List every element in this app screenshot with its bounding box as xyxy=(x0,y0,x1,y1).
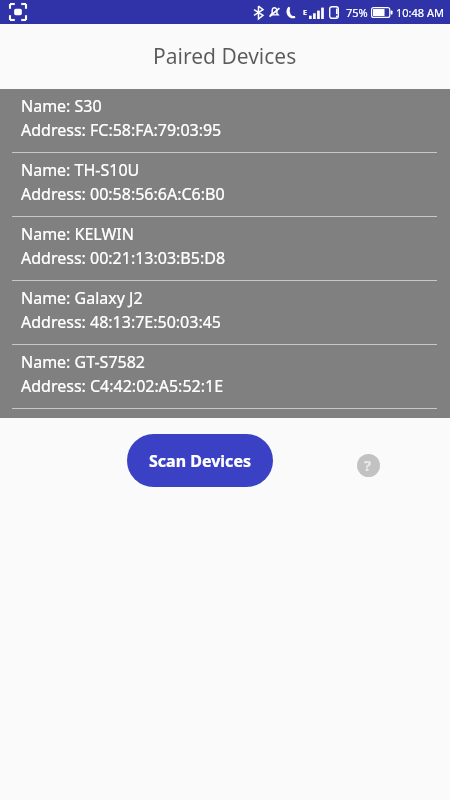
button[interactable]: Name: S30 xyxy=(0,89,450,153)
staticText: ? xyxy=(364,455,372,475)
staticText: Address: 48:13:7E:50:03:45 xyxy=(21,311,222,333)
button[interactable]: Scan Devices xyxy=(127,434,273,487)
staticText: 10:48 AM xyxy=(396,5,444,20)
staticText: Name: S30 xyxy=(21,95,102,117)
staticText: 75% xyxy=(346,5,368,20)
staticText: Address: C4:42:02:A5:52:1E xyxy=(21,375,224,397)
staticText: E xyxy=(303,8,307,18)
staticText: Name: GT-S7582 xyxy=(21,351,146,373)
button[interactable]: Name: Galaxy J2 xyxy=(0,281,450,345)
staticText: Name: Galaxy J2 xyxy=(21,287,143,309)
staticText: Address: 00:21:13:03:B5:D8 xyxy=(21,247,226,269)
staticText: Scan Devices xyxy=(149,450,251,472)
staticText: Address: FC:58:FA:79:03:95 xyxy=(21,119,222,141)
staticText: Name: KELWIN xyxy=(21,223,134,245)
staticText: Paired Devices xyxy=(153,42,297,71)
staticText: Address: 00:58:56:6A:C6:B0 xyxy=(21,183,225,205)
staticText: Name: TH-S10U xyxy=(21,159,140,181)
button[interactable]: Help xyxy=(351,448,385,482)
button[interactable]: Name: KELWIN xyxy=(0,217,450,281)
button[interactable]: Name: GT-S7582 xyxy=(0,345,450,408)
button[interactable]: Name: TH-S10U xyxy=(0,153,450,217)
